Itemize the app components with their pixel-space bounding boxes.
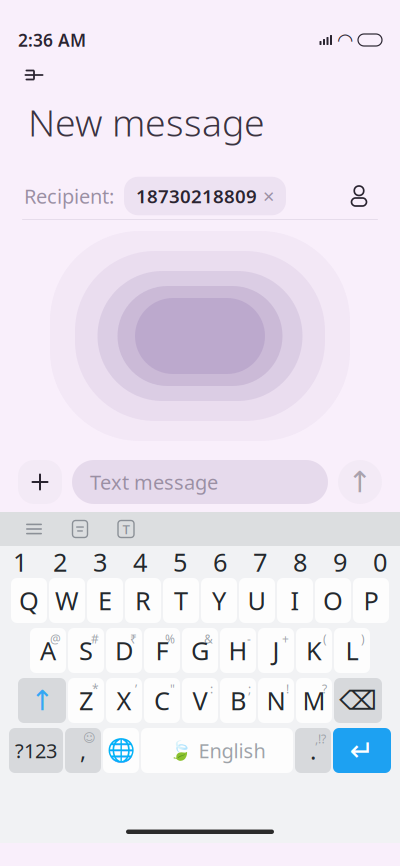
staticText: * bbox=[92, 681, 99, 697]
staticText: 18730218809 bbox=[136, 184, 257, 208]
button[interactable]: % bbox=[144, 628, 180, 673]
staticText: ’ bbox=[135, 681, 137, 697]
button[interactable]: W bbox=[49, 578, 85, 623]
staticText: 4 bbox=[133, 545, 147, 579]
staticText: # bbox=[91, 631, 99, 647]
staticText: ↑ bbox=[347, 465, 372, 499]
button[interactable]: ↑ bbox=[18, 678, 66, 723]
staticText: S bbox=[79, 634, 93, 667]
staticText: T bbox=[122, 520, 129, 538]
button[interactable]: Y bbox=[201, 578, 237, 623]
staticText: 5 bbox=[173, 545, 187, 579]
button[interactable]: 18730218809 bbox=[124, 177, 286, 215]
button[interactable]: Keyboard menu bbox=[20, 515, 48, 543]
button[interactable]: U bbox=[239, 578, 275, 623]
button[interactable]: 3 bbox=[80, 547, 120, 577]
staticText: N bbox=[266, 684, 285, 717]
staticText: ; bbox=[248, 681, 251, 697]
button[interactable]: 7 bbox=[240, 547, 280, 577]
button[interactable]: : bbox=[182, 678, 218, 723]
staticText: V bbox=[192, 684, 207, 717]
staticText: C bbox=[154, 684, 170, 717]
button[interactable]: Text message bbox=[72, 460, 328, 504]
button[interactable]: 1 bbox=[0, 547, 40, 577]
button[interactable]: Back bbox=[14, 58, 54, 92]
staticText: & bbox=[204, 631, 213, 647]
staticText: Text message bbox=[90, 469, 218, 495]
button[interactable]: - bbox=[220, 628, 256, 673]
button[interactable]: # bbox=[68, 628, 104, 673]
staticText: 9 bbox=[333, 545, 347, 579]
staticText: + bbox=[282, 631, 289, 647]
button[interactable]: Choose contact bbox=[342, 179, 376, 213]
staticText: ? bbox=[322, 681, 327, 697]
button[interactable]: E bbox=[87, 578, 123, 623]
staticText: 8 bbox=[293, 545, 307, 579]
staticText: I bbox=[290, 584, 299, 617]
staticText: ↵ bbox=[349, 734, 374, 767]
staticText: T bbox=[174, 584, 188, 617]
staticText: 7 bbox=[253, 545, 267, 579]
button[interactable]: 4 bbox=[120, 547, 160, 577]
staticText: 6 bbox=[213, 545, 227, 579]
staticText: J bbox=[272, 634, 279, 667]
button[interactable]: 🍃 bbox=[141, 728, 293, 773]
button[interactable]: + bbox=[258, 628, 294, 673]
button[interactable]: ? bbox=[296, 678, 332, 723]
staticText: Recipient: bbox=[24, 183, 114, 209]
button[interactable]: & bbox=[182, 628, 218, 673]
button[interactable]: ; bbox=[220, 678, 256, 723]
staticText: ☺ bbox=[83, 731, 96, 745]
staticText: ) bbox=[361, 631, 365, 647]
button[interactable]: ( bbox=[296, 628, 332, 673]
staticText: ◠ bbox=[338, 29, 352, 51]
button[interactable]: ☺ bbox=[65, 728, 101, 773]
button[interactable]: 0 bbox=[360, 547, 400, 577]
button[interactable]: " bbox=[144, 678, 180, 723]
button[interactable]: ! bbox=[258, 678, 294, 723]
staticText: @ bbox=[50, 631, 61, 647]
button[interactable]: Change language bbox=[103, 728, 139, 773]
button[interactable]: @ bbox=[30, 628, 66, 673]
button[interactable]: Return bbox=[333, 728, 391, 773]
staticText: F bbox=[155, 634, 168, 667]
button[interactable]: Backspace bbox=[334, 678, 382, 723]
button[interactable]: ,!? bbox=[295, 728, 331, 773]
staticText: : bbox=[210, 681, 213, 697]
staticText: ?123 bbox=[15, 737, 57, 764]
staticText: H bbox=[228, 634, 247, 667]
staticText: New message bbox=[28, 97, 265, 147]
button[interactable]: 5 bbox=[160, 547, 200, 577]
staticText: M bbox=[302, 684, 325, 717]
button[interactable]: Text tools bbox=[112, 515, 140, 543]
button[interactable]: ) bbox=[334, 628, 370, 673]
button[interactable]: ?123 bbox=[9, 728, 63, 773]
button[interactable]: Clipboard bbox=[66, 515, 94, 543]
button[interactable]: Send bbox=[338, 460, 382, 504]
staticText: % bbox=[165, 631, 175, 647]
button[interactable]: R bbox=[125, 578, 161, 623]
button[interactable]: ’ bbox=[106, 678, 142, 723]
button[interactable]: T bbox=[163, 578, 199, 623]
button[interactable]: 6 bbox=[200, 547, 240, 577]
button[interactable]: 8 bbox=[280, 547, 320, 577]
button[interactable]: ₹ bbox=[106, 628, 142, 673]
button[interactable]: 2 bbox=[40, 547, 80, 577]
button[interactable]: Add attachment bbox=[18, 460, 62, 504]
button[interactable]: P bbox=[353, 578, 389, 623]
staticText: D bbox=[115, 634, 133, 667]
button[interactable]: * bbox=[68, 678, 104, 723]
staticText: English bbox=[198, 737, 265, 764]
staticText: R bbox=[135, 584, 151, 617]
button[interactable]: 9 bbox=[320, 547, 360, 577]
button[interactable]: O bbox=[315, 578, 351, 623]
staticText: , bbox=[80, 735, 86, 765]
staticText: Z bbox=[79, 684, 93, 717]
button[interactable]: Q bbox=[11, 578, 47, 623]
staticText: W bbox=[55, 584, 79, 617]
staticText: B bbox=[230, 684, 246, 717]
staticText: ⌫ bbox=[339, 685, 377, 716]
staticText: O bbox=[323, 584, 343, 617]
button[interactable]: I bbox=[277, 578, 313, 623]
staticText: 0 bbox=[373, 545, 387, 579]
